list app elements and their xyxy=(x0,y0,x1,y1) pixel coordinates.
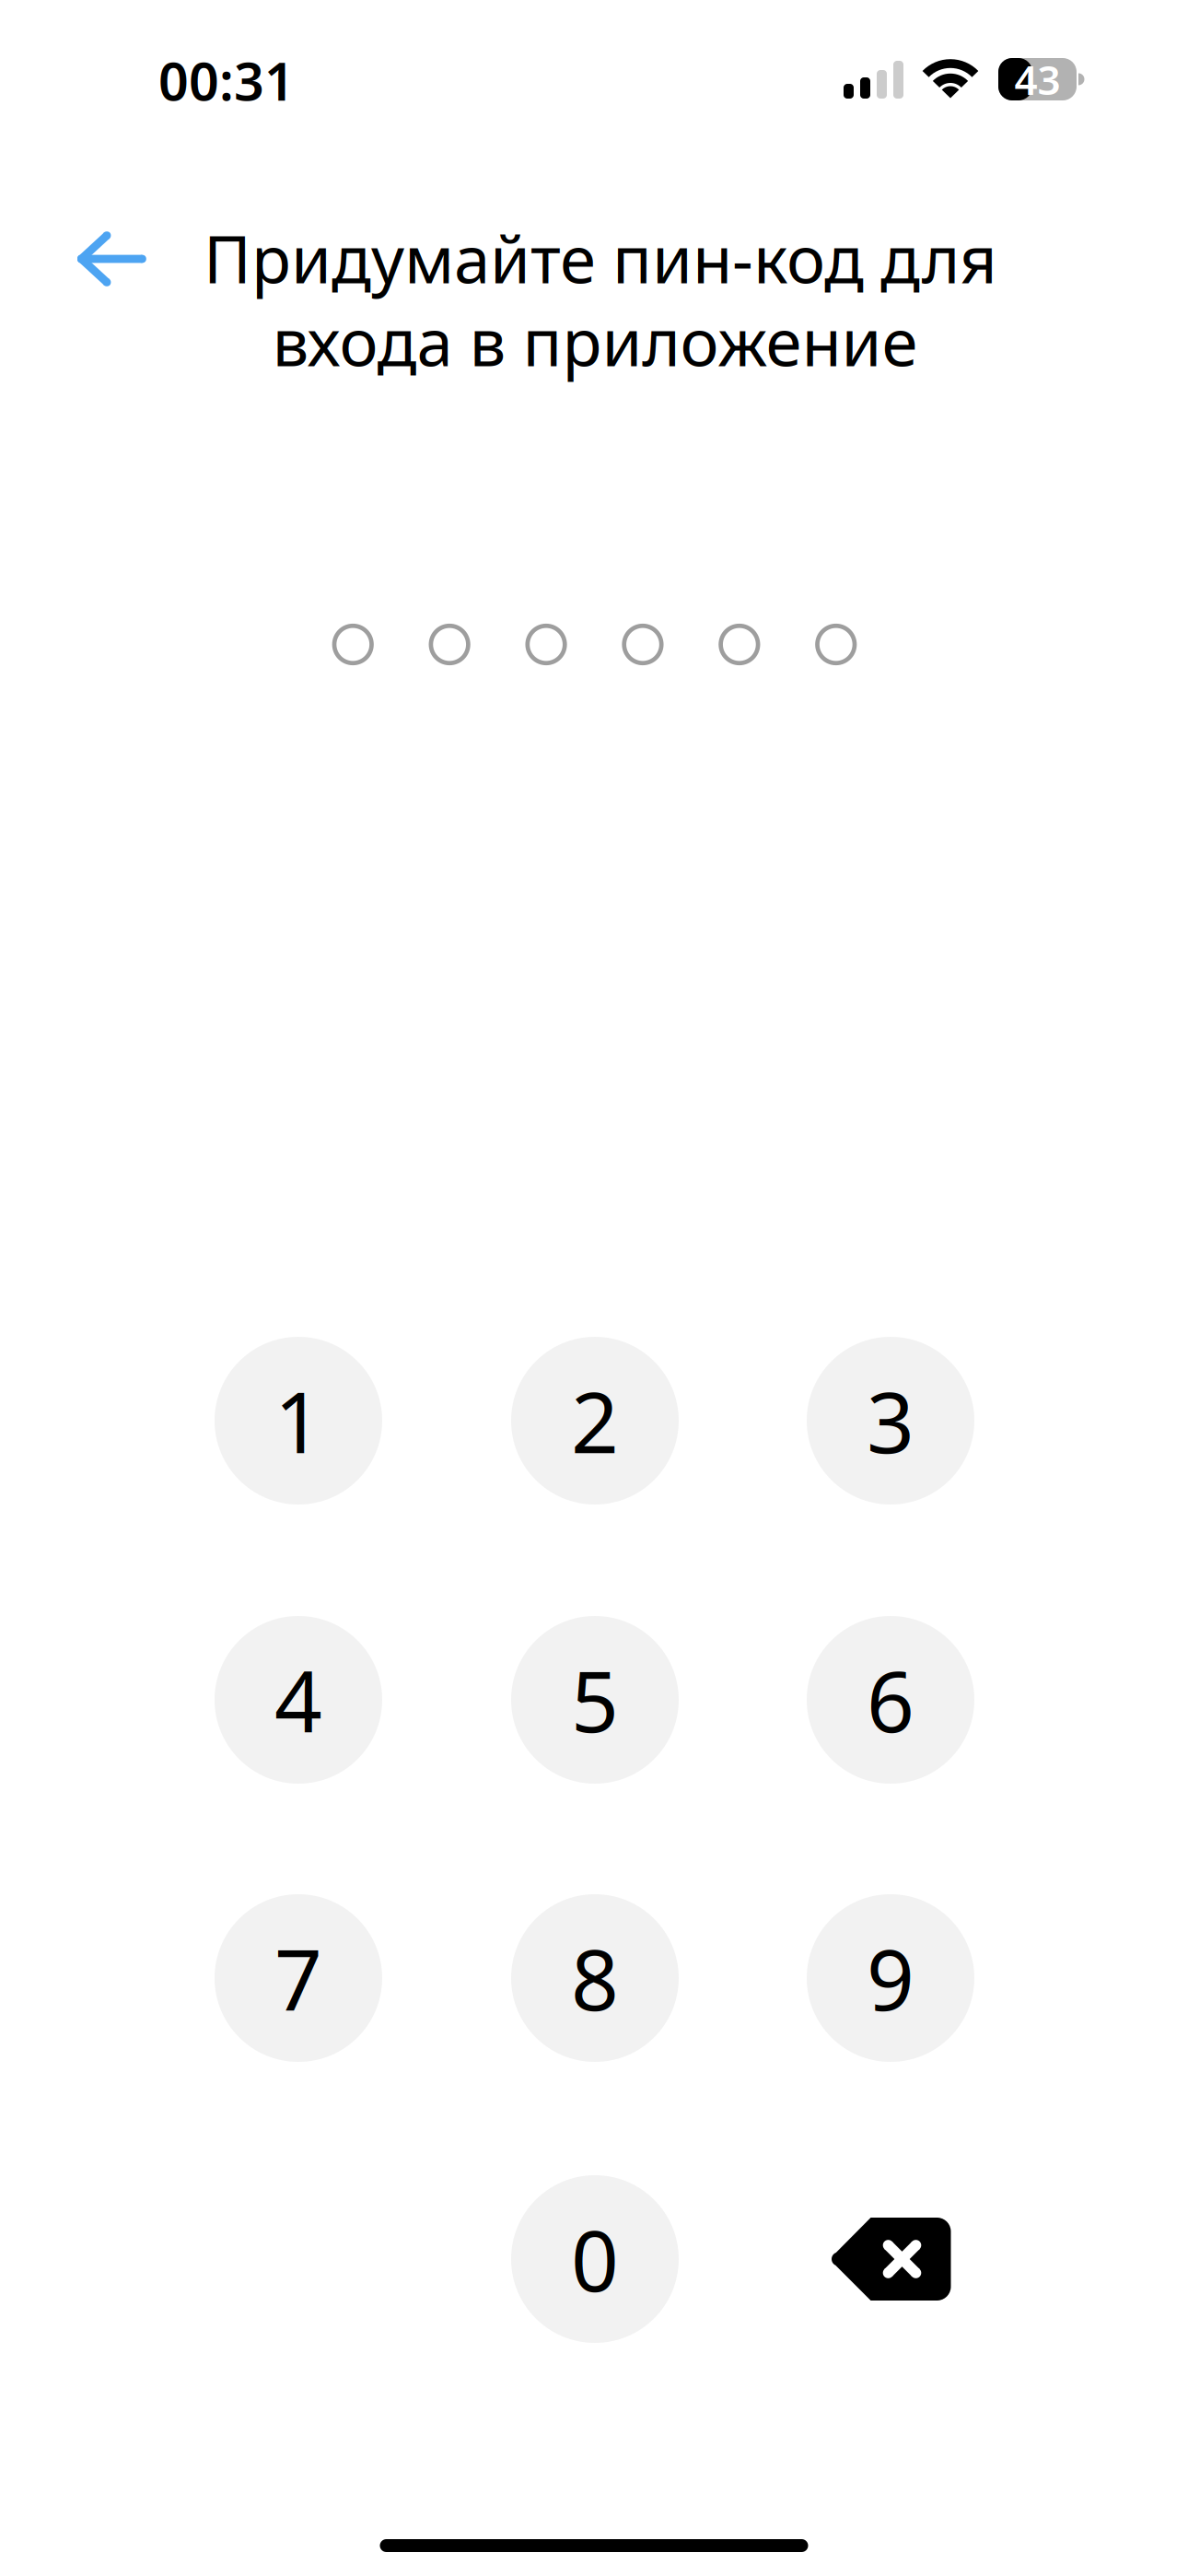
button[interactable]: Delete xyxy=(807,2175,974,2343)
staticText: 43 xyxy=(1014,52,1060,106)
staticText: 2 xyxy=(571,1365,619,1476)
button[interactable]: 0 xyxy=(511,2175,679,2343)
staticText: Придумайте пин-код для xyxy=(204,215,997,301)
button[interactable]: 5 xyxy=(511,1616,679,1784)
button[interactable]: 7 xyxy=(215,1894,382,2062)
staticText: 00:31 xyxy=(158,45,295,115)
staticText: 0 xyxy=(571,2204,619,2315)
button[interactable]: Back xyxy=(42,204,181,314)
staticText: 1 xyxy=(274,1365,322,1476)
staticText: 8 xyxy=(571,1923,619,2034)
staticText: 3 xyxy=(867,1365,914,1476)
staticText: 9 xyxy=(867,1923,914,2034)
staticText: входа в приложение xyxy=(272,298,918,384)
staticText: 5 xyxy=(571,1644,619,1755)
button[interactable]: 2 xyxy=(511,1337,679,1505)
button[interactable]: 8 xyxy=(511,1894,679,2062)
button[interactable]: 6 xyxy=(807,1616,974,1784)
staticText: 6 xyxy=(867,1644,914,1755)
button[interactable]: 3 xyxy=(807,1337,974,1505)
staticText: 7 xyxy=(274,1923,322,2034)
button[interactable]: 1 xyxy=(215,1337,382,1505)
button[interactable]: 4 xyxy=(215,1616,382,1784)
staticText: 4 xyxy=(274,1644,322,1755)
button[interactable]: 9 xyxy=(807,1894,974,2062)
